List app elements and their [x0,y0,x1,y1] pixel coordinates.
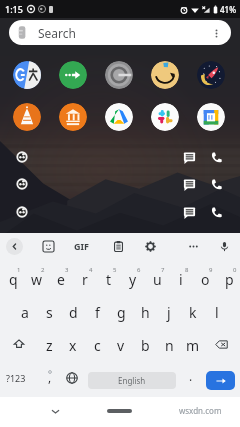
button[interactable]: Message [180,203,198,221]
staticText: w [31,270,43,289]
button[interactable]: g [109,295,133,327]
button[interactable]: App icon [13,61,41,89]
staticText: o [201,270,210,289]
button[interactable]: App icon [105,61,133,89]
button[interactable]: App icon [59,61,87,89]
staticText: u [153,270,162,289]
staticText: 3 [65,266,69,274]
staticText: 1 [17,266,21,274]
staticText: q [9,270,18,289]
button[interactable]: z [37,328,61,360]
button[interactable]: c [85,328,109,360]
staticText: y [129,270,137,289]
button[interactable]: t [97,262,121,294]
button[interactable]: Stickers [40,238,57,255]
staticText: GIF [74,240,89,252]
button[interactable]: Hide keyboard [46,402,64,420]
button[interactable]: Settings [142,238,159,255]
button[interactable]: Message [0,170,240,197]
staticText: c [94,336,101,355]
button[interactable]: Message [0,143,240,170]
button[interactable]: l [205,295,229,327]
staticText: 8 [185,266,189,274]
button[interactable]: GIF [69,240,93,252]
button[interactable]: Home [107,409,132,413]
staticText: z [46,336,53,355]
staticText: t [106,270,112,289]
button[interactable]: Call [207,148,225,166]
button[interactable]: App icon [13,103,41,131]
button[interactable]: v [109,328,133,360]
button[interactable]: f [85,295,109,327]
button[interactable]: Call [207,175,225,193]
staticText: 0 [233,266,237,274]
button[interactable]: e [49,262,73,294]
staticText: m [186,336,200,355]
button[interactable]: q [1,262,25,294]
staticText: e [57,270,65,289]
staticText: English [118,375,146,386]
button[interactable]: d [61,295,85,327]
button[interactable]: b [133,328,157,360]
button[interactable]: Change language [62,364,82,392]
button[interactable]: k [181,295,205,327]
button[interactable]: s [37,295,61,327]
button[interactable]: App icon [151,103,179,131]
button[interactable]: p [217,262,240,294]
button[interactable]: Shift [6,328,32,360]
button[interactable]: , [40,364,60,392]
staticText: . [189,368,193,384]
button[interactable]: Message [180,148,198,166]
button[interactable]: n [157,328,181,360]
button[interactable]: App icon [197,61,225,89]
staticText: Search [38,25,76,41]
button[interactable]: Back [6,238,23,255]
button[interactable]: More options [209,26,223,40]
button[interactable]: Search [9,20,231,45]
button[interactable]: i [169,262,193,294]
button[interactable]: u [145,262,169,294]
staticText: 41% [220,4,236,15]
staticText: ?123 [6,372,26,384]
staticText: , [48,369,52,385]
staticText: j [167,303,171,322]
button[interactable]: Backspace [208,328,234,360]
staticText: wsxdn.com [179,405,222,416]
button[interactable]: App icon [105,103,133,131]
staticText: 2 [41,266,45,274]
button[interactable]: More [185,238,202,255]
staticText: b [141,336,150,355]
staticText: p [225,270,234,289]
button[interactable]: Call [207,203,225,221]
button[interactable]: App icon [151,61,179,89]
button[interactable]: h [133,295,157,327]
button[interactable]: a [13,295,37,327]
button[interactable]: English [88,372,176,389]
button[interactable]: Voice input [216,238,233,255]
button[interactable]: ?123 [2,364,30,392]
button[interactable]: App icon [197,103,225,131]
staticText: i [179,270,183,289]
staticText: v [117,336,125,355]
staticText: 9 [209,266,213,274]
staticText: f [95,303,100,322]
staticText: 7 [161,266,165,274]
button[interactable]: Enter [206,371,235,390]
staticText: s [46,303,53,322]
button[interactable]: y [121,262,145,294]
button[interactable]: Message [180,175,198,193]
button[interactable]: Message [0,198,240,225]
staticText: 6 [137,266,141,274]
staticText: r [82,270,88,289]
button[interactable]: j [157,295,181,327]
staticText: x [69,336,77,355]
button[interactable]: . [181,364,201,392]
button[interactable]: App icon [59,103,87,131]
staticText: l [215,303,219,322]
button[interactable]: m [181,328,205,360]
button[interactable]: Clipboard [110,238,127,255]
button[interactable]: w [25,262,49,294]
button[interactable]: x [61,328,85,360]
button[interactable]: o [193,262,217,294]
button[interactable]: r [73,262,97,294]
